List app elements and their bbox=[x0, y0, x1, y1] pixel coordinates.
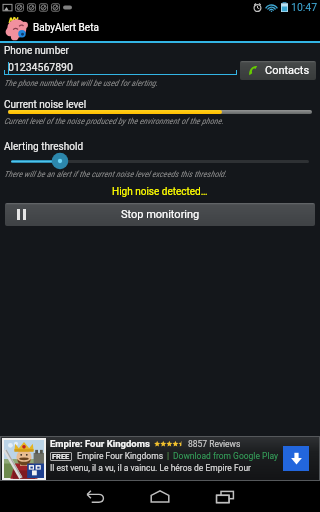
staticText: There will be an alert if the current no… bbox=[4, 169, 227, 179]
button[interactable]: Contacts bbox=[240, 61, 316, 80]
staticText: 10:47 bbox=[291, 1, 318, 13]
staticText: 01234567890 bbox=[8, 61, 73, 73]
staticText: Contacts bbox=[265, 64, 310, 77]
staticText: FREE bbox=[52, 452, 70, 461]
staticText: Il est venu, il a vu, il a vaincu. Le hé… bbox=[50, 463, 281, 473]
staticText: Phone number bbox=[4, 45, 69, 57]
staticText: High noise detected… bbox=[112, 186, 208, 198]
staticText: | bbox=[167, 451, 170, 461]
button[interactable]: Back bbox=[76, 481, 114, 512]
button[interactable]: Download bbox=[283, 446, 309, 471]
staticText: 8857 Reviews bbox=[188, 439, 241, 449]
staticText: BabyAlert Beta bbox=[33, 22, 99, 34]
staticText: Empire Four Kingdoms bbox=[77, 451, 164, 461]
staticText: Alerting threshold bbox=[4, 141, 84, 153]
staticText: The phone number that will be used for a… bbox=[4, 78, 159, 88]
button[interactable]: Threshold slider bbox=[49, 152, 71, 170]
staticText: Current noise level bbox=[4, 99, 87, 111]
button[interactable]: Empire: Four Kingdoms bbox=[0, 436, 320, 481]
staticText: Current level of the noise produced by t… bbox=[4, 116, 224, 126]
staticText: Empire: Four Kingdoms bbox=[50, 438, 150, 449]
button[interactable]: Home bbox=[141, 481, 179, 512]
staticText: Download from Google Play bbox=[173, 451, 279, 461]
staticText: Stop monitoring bbox=[121, 208, 200, 221]
button[interactable]: Stop monitoring bbox=[5, 203, 315, 226]
button[interactable]: Recents bbox=[206, 481, 244, 512]
